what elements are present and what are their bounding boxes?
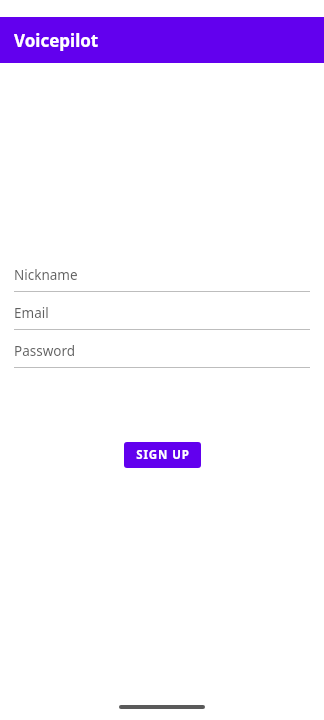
staticText: Nickname <box>14 266 78 284</box>
button[interactable]: Nickname <box>14 262 310 292</box>
other: Home gesture handle <box>119 705 205 709</box>
staticText: Password <box>14 342 76 360</box>
staticText: Email <box>14 304 49 322</box>
button[interactable]: Password <box>14 338 310 368</box>
staticText: Voicepilot <box>14 29 99 52</box>
button[interactable]: Email <box>14 300 310 330</box>
button[interactable]: SIGN UP <box>124 442 201 468</box>
staticText: SIGN UP <box>136 447 190 463</box>
